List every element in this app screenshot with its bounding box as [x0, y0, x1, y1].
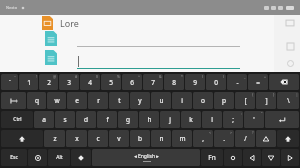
button[interactable]: shift	[1, 130, 43, 147]
staticText: >	[230, 130, 233, 135]
button[interactable]: d	[76, 111, 96, 128]
button[interactable]: "	[244, 111, 264, 128]
button[interactable]: %	[101, 74, 121, 90]
button[interactable]: t	[109, 92, 129, 109]
staticText: (	[202, 74, 204, 79]
staticText: Esc	[10, 154, 18, 161]
button[interactable]: f	[97, 111, 117, 128]
button[interactable]: v	[109, 130, 129, 147]
staticText: [	[244, 96, 247, 105]
button[interactable]: $	[80, 74, 100, 90]
button[interactable]: <	[193, 130, 213, 147]
button[interactable]: ?	[235, 130, 255, 147]
staticText: b	[138, 134, 142, 143]
button[interactable]: x	[66, 130, 87, 147]
staticText: 1	[27, 78, 31, 87]
button[interactable]: Document	[45, 50, 57, 65]
button[interactable]: s	[55, 111, 75, 128]
button[interactable]: @	[39, 74, 58, 90]
staticText: Lore	[60, 17, 79, 29]
button[interactable]: m	[172, 130, 192, 147]
button[interactable]: &	[143, 74, 163, 90]
button[interactable]: u	[151, 92, 171, 109]
button[interactable]: Lore	[40, 14, 81, 32]
button[interactable]: up	[256, 130, 276, 147]
staticText: 7	[151, 78, 155, 87]
staticText: <	[209, 130, 212, 135]
staticText: Nexto	[6, 5, 18, 10]
button[interactable]: shift	[277, 130, 299, 147]
button[interactable]: down	[262, 149, 280, 166]
button[interactable]: *	[164, 74, 184, 90]
button[interactable]: left	[243, 149, 261, 166]
staticText: t	[118, 96, 121, 105]
button[interactable]: e	[67, 92, 87, 109]
button[interactable]: i	[172, 92, 192, 109]
button[interactable]: Add	[281, 108, 300, 132]
button[interactable]: Options	[287, 60, 294, 67]
button[interactable]: l	[202, 111, 222, 128]
button[interactable]: z	[44, 130, 65, 147]
button[interactable]: dot	[224, 149, 242, 166]
button[interactable]: )	[206, 74, 226, 90]
button[interactable]: +	[248, 74, 268, 90]
button[interactable]: h	[139, 111, 159, 128]
staticText: Alt	[56, 154, 63, 161]
staticText: :	[241, 111, 242, 116]
staticText: q	[35, 96, 39, 105]
button[interactable]: c	[88, 130, 108, 147]
button[interactable]: #	[59, 74, 79, 90]
button[interactable]: w	[47, 92, 66, 109]
button[interactable]: !	[19, 74, 38, 90]
staticText: -	[236, 78, 239, 87]
button[interactable]: tab	[1, 92, 26, 109]
button[interactable]: {	[235, 92, 255, 109]
staticText: 5	[109, 78, 113, 87]
button[interactable]: (	[185, 74, 205, 90]
button[interactable]: Alt	[48, 149, 70, 166]
staticText: |	[296, 92, 298, 97]
button[interactable]: Select	[287, 43, 294, 50]
button[interactable]: y	[130, 92, 150, 109]
button[interactable]: b	[130, 130, 150, 147]
button[interactable]: p	[214, 92, 234, 109]
button[interactable]: lang	[71, 149, 91, 166]
staticText: j	[169, 115, 171, 124]
button[interactable]: _	[227, 74, 247, 90]
button[interactable]: |	[277, 92, 299, 109]
button[interactable]: right	[281, 149, 299, 166]
button[interactable]: Document	[45, 31, 57, 46]
button[interactable]: n	[151, 130, 171, 147]
button[interactable]: ~	[1, 74, 18, 90]
staticText: d	[84, 115, 88, 124]
button[interactable]: Fn	[201, 149, 223, 166]
staticText: i	[181, 96, 183, 105]
button[interactable]: :	[223, 111, 243, 128]
staticText: 3	[67, 78, 71, 87]
button[interactable]: Ctrl	[1, 111, 33, 128]
button[interactable]: a	[34, 111, 54, 128]
button[interactable]: g	[118, 111, 138, 128]
button[interactable]: >	[214, 130, 234, 147]
button[interactable]: r	[88, 92, 108, 109]
staticText: 4	[88, 78, 92, 87]
button[interactable]: bksp	[269, 74, 299, 90]
button[interactable]: Esc	[1, 149, 27, 166]
staticText: Ctrl	[13, 116, 22, 123]
button[interactable]: o	[193, 92, 213, 109]
button[interactable]: q	[27, 92, 46, 109]
button[interactable]: Keyboard	[286, 19, 294, 27]
staticText: $	[96, 74, 99, 79]
button[interactable]: settings	[28, 149, 47, 166]
button[interactable]: k	[181, 111, 201, 128]
staticText: s	[63, 115, 67, 124]
staticText: y	[138, 96, 142, 105]
staticText: z	[53, 134, 57, 143]
button[interactable]: enter	[265, 111, 299, 128]
button[interactable]: }	[256, 92, 276, 109]
staticText: m	[179, 134, 186, 143]
button[interactable]: ◂ English ▸	[92, 149, 200, 166]
button[interactable]: ^	[122, 74, 142, 90]
button[interactable]	[77, 55, 240, 69]
button[interactable]: j	[160, 111, 180, 128]
